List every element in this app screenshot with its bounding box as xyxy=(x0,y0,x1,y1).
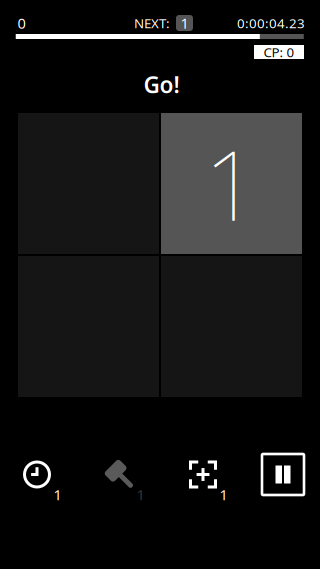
staticText: 1 xyxy=(53,485,61,504)
staticText: 1 xyxy=(219,485,227,504)
button[interactable]: Add tile xyxy=(188,460,232,500)
button[interactable]: Slow time xyxy=(22,460,66,500)
button[interactable]: Hammer xyxy=(105,460,149,500)
staticText: 1 xyxy=(204,120,259,247)
staticText: 1 xyxy=(180,13,188,33)
staticText: Go! xyxy=(143,69,179,99)
button[interactable]: Pause xyxy=(262,454,304,495)
staticText: NEXT: xyxy=(134,14,170,32)
staticText: 1 xyxy=(136,485,144,504)
staticText: CP: 0 xyxy=(263,43,294,61)
staticText: 0:00:04.23 xyxy=(237,14,305,32)
staticText: 0 xyxy=(17,13,25,33)
